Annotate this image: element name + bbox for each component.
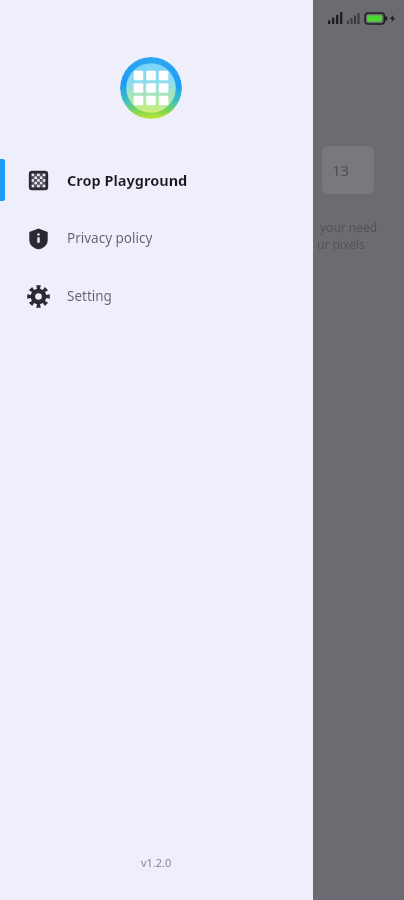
staticText: your need — [320, 219, 378, 235]
staticText: 13 — [332, 160, 350, 180]
staticText: v1.2.0 — [141, 855, 172, 870]
button[interactable]: Setting — [0, 267, 313, 325]
staticText: Setting — [67, 287, 112, 305]
button[interactable]: Privacy policy — [0, 209, 313, 267]
staticText: Privacy policy — [67, 229, 153, 247]
staticText: Crop Playground — [67, 170, 188, 190]
staticText: ur pixels — [317, 236, 365, 252]
button[interactable]: Crop Playground — [0, 151, 313, 209]
